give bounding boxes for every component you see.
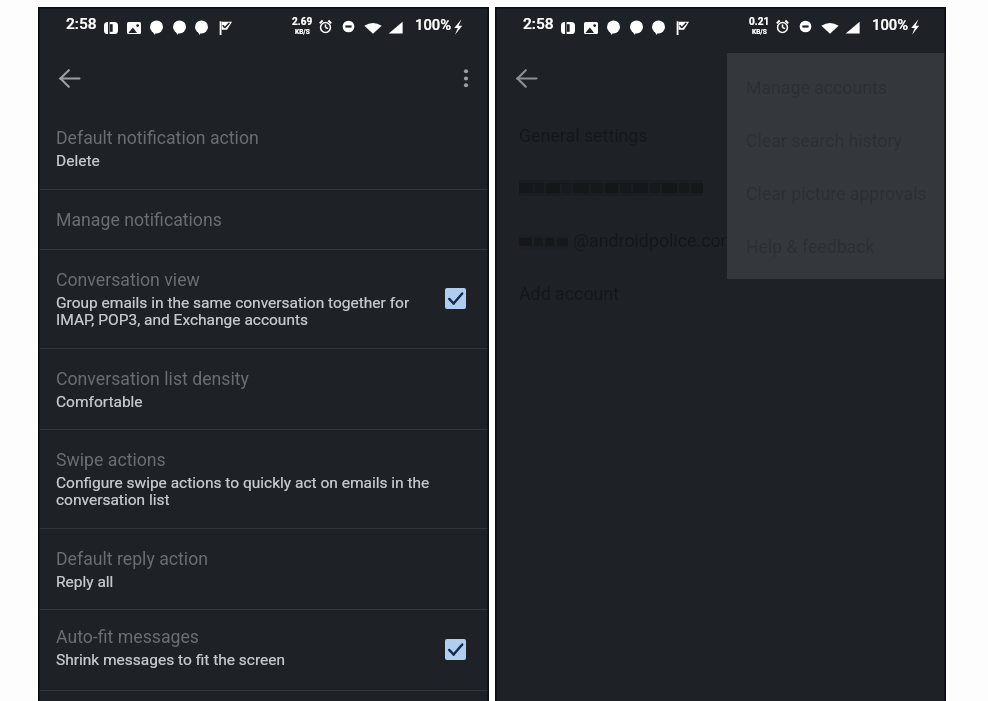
staticText: Default notification action bbox=[56, 128, 259, 149]
staticText: Conversation view bbox=[56, 270, 200, 291]
staticText: Group emails in the same conversation to… bbox=[56, 294, 410, 329]
staticText: Manage accounts bbox=[746, 78, 887, 99]
button[interactable]: Clear search history bbox=[727, 111, 946, 163]
staticText: Help & feedback bbox=[746, 237, 875, 258]
staticText: 100% bbox=[415, 16, 452, 33]
button[interactable]: Conversation list density bbox=[38, 348, 489, 429]
button[interactable]: Default notification action bbox=[38, 110, 489, 189]
button[interactable]: Add account bbox=[495, 270, 946, 314]
staticText: Delete bbox=[56, 152, 100, 170]
staticText: Shrink messages to fit the screen bbox=[56, 651, 286, 669]
staticText: 0.21 bbox=[749, 16, 770, 28]
staticText: 2:58 bbox=[66, 15, 97, 33]
staticText: Reply all bbox=[56, 573, 114, 591]
staticText: General settings bbox=[519, 125, 648, 146]
button[interactable]: Manage accounts bbox=[727, 58, 946, 110]
staticText: 2:58 bbox=[523, 15, 554, 33]
staticText: 100% bbox=[872, 16, 909, 33]
staticText: Swipe actions bbox=[56, 450, 166, 471]
staticText: Auto-fit messages bbox=[56, 627, 199, 648]
staticText: Configure swipe actions to quickly act o… bbox=[56, 474, 430, 509]
button[interactable]: Manage notifications bbox=[38, 189, 489, 249]
staticText: 2.69 bbox=[292, 16, 313, 28]
button[interactable] bbox=[495, 167, 946, 215]
button[interactable]: Back bbox=[45, 54, 93, 102]
staticText: KB/S bbox=[752, 28, 767, 36]
button[interactable]: Swipe actions bbox=[38, 429, 489, 528]
staticText: Add account bbox=[519, 283, 620, 304]
button[interactable]: Back bbox=[502, 54, 550, 102]
staticText: KB/S bbox=[295, 28, 310, 36]
staticText: Default reply action bbox=[56, 549, 209, 570]
button[interactable]: Auto-fit messages bbox=[38, 609, 489, 690]
staticText: @androidpolice.com bbox=[573, 230, 737, 251]
button[interactable]: Default reply action bbox=[38, 528, 489, 609]
button[interactable]: Conversation view bbox=[38, 249, 489, 348]
button[interactable]: More options bbox=[442, 54, 490, 102]
button[interactable]: Help & feedback bbox=[727, 217, 946, 269]
button[interactable]: @androidpolice.com bbox=[495, 218, 946, 266]
button[interactable]: General settings bbox=[495, 112, 946, 154]
button[interactable]: Clear picture approvals bbox=[727, 164, 946, 216]
staticText: Comfortable bbox=[56, 393, 143, 411]
staticText: Conversation list density bbox=[56, 369, 249, 390]
staticText: Manage notifications bbox=[56, 210, 222, 231]
